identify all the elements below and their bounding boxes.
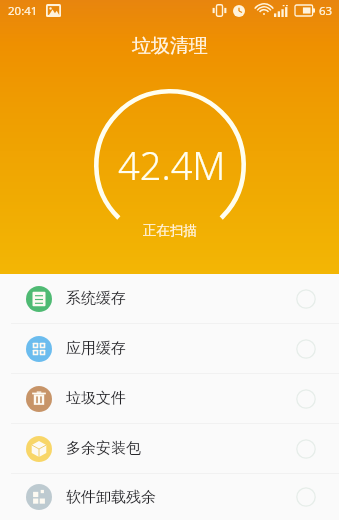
staticText: 垃圾清理	[132, 34, 208, 58]
staticText: 多余安装包	[66, 439, 141, 458]
button[interactable]: Select 软件卸载残余	[296, 487, 316, 507]
button[interactable]: 系统缓存	[0, 274, 339, 323]
staticText: 20:41	[8, 3, 38, 19]
staticText: 垃圾文件	[66, 389, 126, 408]
button[interactable]: 垃圾文件	[0, 374, 339, 423]
other: Screenshot	[46, 4, 61, 17]
staticText: 应用缓存	[66, 339, 126, 358]
button[interactable]: Select 应用缓存	[296, 339, 316, 359]
staticText: 42.4M	[118, 139, 226, 191]
button[interactable]: 多余安装包	[0, 424, 339, 473]
button[interactable]: Select 多余安装包	[296, 439, 316, 459]
button[interactable]: 应用缓存	[0, 324, 339, 373]
button[interactable]: Select 系统缓存	[296, 289, 316, 309]
other: Alarm	[233, 5, 245, 17]
button[interactable]: 软件卸载残余	[0, 474, 339, 520]
staticText: 软件卸载残余	[66, 488, 156, 507]
other: Wi-Fi	[257, 5, 271, 16]
button[interactable]: Select 垃圾文件	[296, 389, 316, 409]
other: Mobile signal	[274, 5, 289, 17]
staticText: 63	[319, 3, 333, 19]
staticText: 正在扫描	[143, 222, 197, 239]
staticText: 系统缓存	[66, 289, 126, 308]
other: Vibrate mode	[212, 4, 227, 17]
other: Battery	[295, 5, 315, 16]
